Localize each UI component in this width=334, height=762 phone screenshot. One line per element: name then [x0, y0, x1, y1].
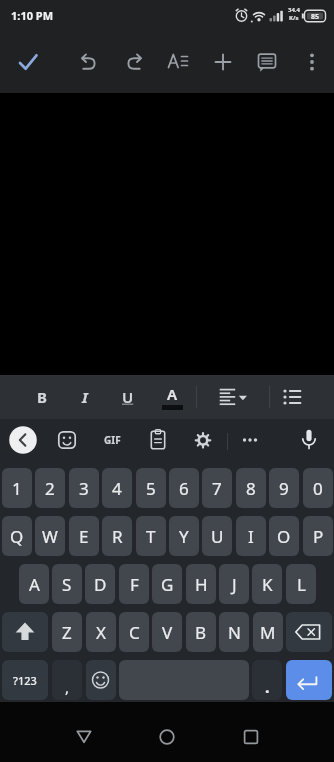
button[interactable]: 7	[202, 468, 232, 508]
staticText: L	[297, 573, 306, 596]
staticText: F	[130, 573, 139, 596]
staticText: A	[167, 384, 178, 404]
button[interactable]: ?123	[2, 660, 48, 700]
staticText: E	[79, 525, 89, 548]
button[interactable]: U	[110, 375, 146, 419]
staticText: 9	[279, 477, 289, 500]
button[interactable]: D	[85, 564, 115, 604]
button[interactable]: .	[252, 660, 282, 700]
button[interactable]: A	[153, 375, 191, 419]
button[interactable]: Y	[169, 516, 199, 556]
button[interactable]: Q	[2, 516, 32, 556]
staticText: W	[42, 525, 58, 548]
staticText: G	[161, 573, 174, 596]
button[interactable]: M	[253, 612, 283, 652]
staticText: 0	[313, 477, 323, 500]
button[interactable]: L	[286, 564, 316, 604]
button[interactable]	[286, 612, 332, 652]
button[interactable]: K	[252, 564, 282, 604]
button[interactable]: 6	[169, 468, 199, 508]
button[interactable]: H	[186, 564, 216, 604]
button[interactable]: W	[35, 516, 65, 556]
staticText: 4	[112, 477, 122, 500]
button[interactable]: I	[67, 375, 103, 419]
staticText: S	[62, 573, 72, 596]
button[interactable]	[5, 422, 41, 458]
staticText: Y	[179, 525, 189, 548]
button[interactable]	[287, 418, 331, 462]
button[interactable]	[112, 40, 156, 84]
staticText: 2	[45, 477, 55, 500]
staticText: .	[265, 676, 270, 698]
button[interactable]: A	[19, 564, 49, 604]
staticText: GIF	[104, 433, 121, 447]
button[interactable]	[290, 40, 334, 84]
button[interactable]: O	[269, 516, 299, 556]
button[interactable]: 3	[69, 468, 99, 508]
button[interactable]: ,	[52, 660, 82, 700]
button[interactable]: N	[219, 612, 249, 652]
button[interactable]	[181, 418, 225, 462]
button[interactable]: X	[86, 612, 116, 652]
staticText: ?123	[13, 673, 37, 688]
button[interactable]: T	[136, 516, 166, 556]
button[interactable]: 8	[236, 468, 266, 508]
button[interactable]	[86, 660, 116, 700]
staticText: H	[195, 573, 208, 596]
button[interactable]: R	[102, 516, 132, 556]
staticText: U	[122, 387, 134, 407]
button[interactable]	[136, 418, 180, 462]
staticText: Z	[62, 621, 72, 644]
staticText: D	[94, 573, 107, 596]
button[interactable]: G	[152, 564, 182, 604]
button[interactable]	[245, 40, 289, 84]
staticText: K	[262, 573, 273, 596]
button[interactable]: GIF	[92, 420, 132, 460]
staticText: I	[248, 525, 254, 548]
button[interactable]	[156, 40, 200, 84]
button[interactable]: 5	[136, 468, 166, 508]
button[interactable]	[270, 375, 314, 419]
button[interactable]	[67, 40, 111, 84]
staticText: P	[313, 525, 324, 548]
button[interactable]: 4	[102, 468, 132, 508]
button[interactable]	[145, 715, 189, 759]
button[interactable]	[2, 612, 48, 652]
button[interactable]: P	[303, 516, 333, 556]
staticText: 7	[212, 477, 222, 500]
button[interactable]: B	[186, 612, 216, 652]
button[interactable]	[62, 715, 106, 759]
button[interactable]: U	[202, 516, 232, 556]
button[interactable]: 9	[269, 468, 299, 508]
button[interactable]: J	[219, 564, 249, 604]
staticText: 8	[246, 477, 256, 500]
button[interactable]	[229, 715, 273, 759]
button[interactable]: B	[24, 375, 60, 419]
button[interactable]: 2	[35, 468, 65, 508]
staticText: R	[112, 525, 123, 548]
button[interactable]	[214, 375, 258, 419]
staticText: Q	[10, 525, 24, 548]
staticText: 85	[311, 12, 320, 22]
button[interactable]: V	[152, 612, 182, 652]
button[interactable]: C	[119, 612, 149, 652]
staticText: I	[82, 387, 88, 407]
button[interactable]: F	[119, 564, 149, 604]
button[interactable]	[228, 418, 272, 462]
button[interactable]: E	[69, 516, 99, 556]
button[interactable]	[286, 660, 332, 700]
staticText: X	[96, 621, 106, 644]
button[interactable]: S	[52, 564, 82, 604]
staticText: 3	[79, 477, 89, 500]
staticText: B	[37, 387, 47, 407]
button[interactable]	[201, 40, 245, 84]
button[interactable]: 0	[303, 468, 333, 508]
staticText: C	[129, 621, 140, 644]
button[interactable]: 1	[2, 468, 32, 508]
button[interactable]: I	[236, 516, 266, 556]
button[interactable]: Z	[52, 612, 82, 652]
button[interactable]	[45, 418, 89, 462]
button[interactable]	[6, 40, 50, 84]
